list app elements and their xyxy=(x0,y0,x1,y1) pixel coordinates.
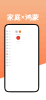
staticText: 家庭×鸿蒙 xyxy=(7,13,39,22)
